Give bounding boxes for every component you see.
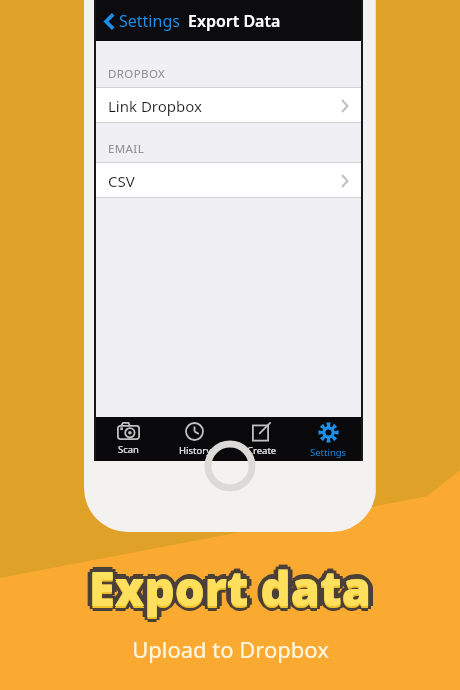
staticText: Link Dropbox bbox=[108, 96, 202, 116]
staticText: Upload to Dropbox bbox=[132, 634, 329, 664]
button[interactable]: CSV bbox=[95, 163, 362, 198]
staticText: Settings bbox=[310, 446, 347, 459]
staticText: Export data bbox=[86, 559, 368, 623]
staticText: Export data bbox=[89, 556, 371, 620]
button[interactable]: History bbox=[161, 417, 228, 461]
staticText: Export data bbox=[86, 556, 368, 620]
staticText: Export data bbox=[92, 556, 374, 620]
button[interactable]: Settings bbox=[295, 417, 362, 461]
other: Scan bbox=[117, 422, 140, 440]
staticText: Create bbox=[247, 444, 277, 457]
staticText: Export data bbox=[89, 559, 371, 623]
button[interactable]: Link Dropbox bbox=[95, 88, 362, 123]
staticText: CSV bbox=[108, 171, 135, 191]
staticText: Export data bbox=[89, 551, 371, 615]
staticText: EMAIL bbox=[108, 141, 145, 157]
staticText: DROPBOX bbox=[108, 66, 166, 82]
staticText: Export Data bbox=[188, 10, 281, 32]
staticText: Export data bbox=[89, 558, 371, 622]
staticText: Settings bbox=[119, 10, 180, 32]
staticText: Export data bbox=[84, 556, 366, 620]
staticText: History bbox=[179, 444, 211, 457]
button[interactable]: Scan bbox=[95, 417, 161, 461]
other: History bbox=[185, 422, 204, 441]
staticText: Export data bbox=[89, 553, 371, 617]
staticText: Export data bbox=[86, 553, 368, 617]
staticText: Export data bbox=[92, 553, 374, 617]
other: Settings bbox=[318, 422, 339, 443]
button[interactable]: Settings bbox=[103, 6, 182, 36]
staticText: Export data bbox=[94, 556, 376, 620]
other: Create bbox=[252, 422, 271, 441]
staticText: Scan bbox=[118, 443, 139, 456]
staticText: Export data bbox=[89, 561, 371, 625]
staticText: Export data bbox=[92, 559, 374, 623]
button[interactable]: Create bbox=[228, 417, 295, 461]
